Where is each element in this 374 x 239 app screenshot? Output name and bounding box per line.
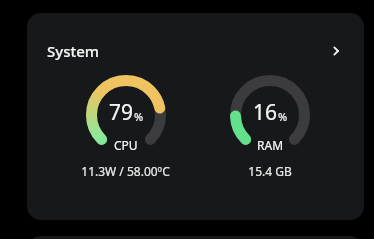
button[interactable]: Open system details xyxy=(324,39,348,63)
staticText: RAM xyxy=(257,137,284,153)
staticText: % xyxy=(278,109,288,124)
staticText: CPU xyxy=(114,137,138,153)
staticText: System xyxy=(47,41,100,61)
staticText: 15.4 GB xyxy=(248,163,292,179)
staticText: 11.3W / 58.00ºC xyxy=(81,163,170,179)
staticText: 79 xyxy=(109,98,134,127)
staticText: 16 xyxy=(253,98,278,127)
button[interactable]: System xyxy=(27,13,364,220)
button[interactable] xyxy=(27,236,364,239)
staticText: % xyxy=(134,109,144,124)
